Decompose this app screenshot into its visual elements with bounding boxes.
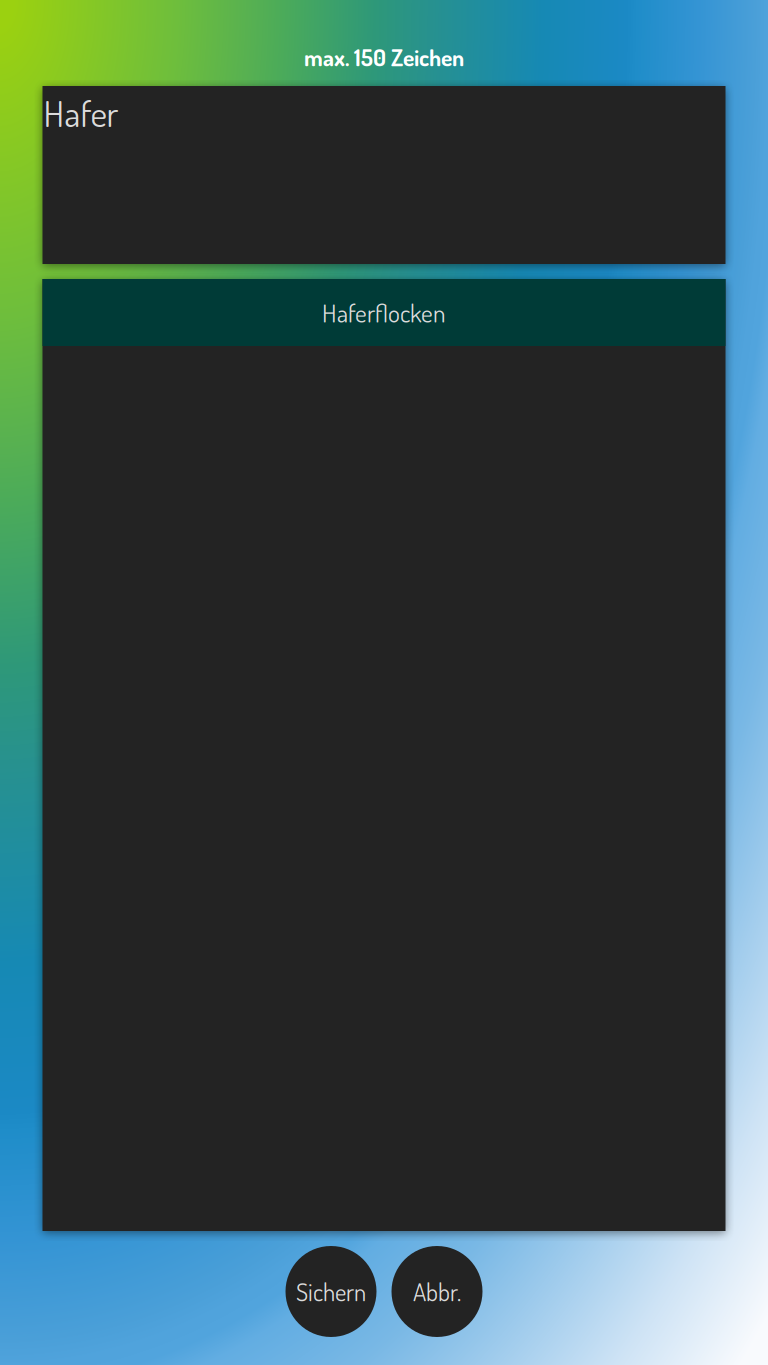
button[interactable]: Abbr. [391,1246,482,1337]
staticText: Hafer [43,90,118,135]
button[interactable]: Haferflocken [42,279,725,346]
button[interactable]: Sichern [285,1246,376,1337]
staticText: Abbr. [413,1276,461,1307]
staticText: Sichern [296,1276,366,1307]
staticText: Haferflocken [322,296,446,328]
staticText: max. 150 Zeichen [304,42,464,72]
